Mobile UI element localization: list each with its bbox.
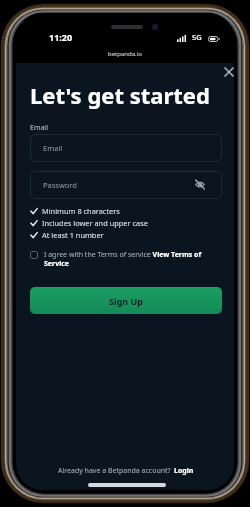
button[interactable]: Show password	[193, 177, 207, 191]
button[interactable]: I agree with the Terms of service View T…	[30, 250, 222, 268]
button[interactable]: Email	[30, 134, 222, 162]
staticText: Login	[174, 466, 194, 476]
staticText: Sign Up	[109, 295, 144, 307]
staticText: At least 1 number	[42, 230, 104, 240]
staticText: Already have a Betpanda account?	[58, 466, 171, 476]
button[interactable]: Close	[221, 64, 234, 80]
staticText: I agree with the Terms of service View T…	[44, 250, 222, 268]
button[interactable]: Login	[174, 466, 194, 476]
staticText: Email	[30, 123, 48, 133]
staticText: 5G	[192, 32, 202, 42]
button[interactable]: Password	[30, 171, 222, 199]
staticText: Includes lower and upper case	[42, 218, 148, 228]
staticText: Minimum 8 characters	[42, 206, 120, 216]
staticText: Password	[43, 180, 77, 190]
button[interactable]: Sign Up	[30, 287, 222, 314]
staticText: Let's get started	[30, 80, 210, 110]
staticText: betpanda.io	[108, 50, 142, 58]
staticText: Email	[43, 143, 63, 153]
staticText: 11:20	[49, 31, 73, 43]
